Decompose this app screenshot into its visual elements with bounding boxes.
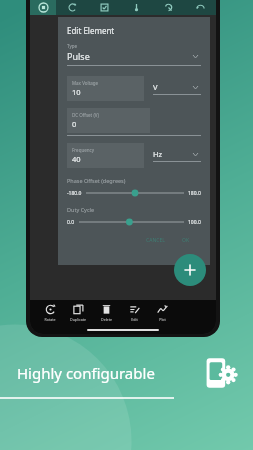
staticText: Edit [131,317,138,322]
button[interactable]: Max Voltage [67,76,144,101]
button[interactable]: Duplicate [64,300,92,325]
button[interactable]: Record [30,0,56,15]
staticText: 40 [72,154,81,164]
staticText: Duty Cycle [67,206,95,213]
staticText: Highly configurable [17,363,155,383]
button[interactable]: Hz [153,149,201,162]
button[interactable]: Check [88,0,120,15]
staticText: Max Voltage [72,80,99,86]
staticText: Phase Offset (degrees) [67,177,126,184]
staticText: 10 [72,87,81,97]
staticText: 0.0 [67,219,75,226]
button[interactable]: Tool [120,0,152,15]
button[interactable]: Undo [56,0,88,15]
staticText: DC Offset (V) [72,112,99,118]
button[interactable]: Return [184,0,216,15]
staticText: Duplicate [70,317,86,322]
other: Configurable [206,355,236,391]
staticText: Pulse [67,50,90,62]
staticText: 0 [72,119,77,129]
button[interactable]: Delete [92,300,120,325]
staticText: Frequency [72,147,94,153]
staticText: Edit Element [67,25,115,36]
staticText: Hz [153,149,163,159]
button[interactable] [86,189,184,197]
staticText: Type [67,43,78,49]
staticText: V [153,82,158,92]
staticText: -180.0 [67,190,82,197]
staticText: Rotate [44,317,56,322]
button[interactable]: Touch [152,0,184,15]
button[interactable]: OK [177,235,195,246]
staticText: 100.0 [188,219,201,226]
button[interactable]: Frequency [67,143,144,168]
button[interactable]: Rotate [36,300,64,325]
staticText: 180.0 [188,190,201,197]
button[interactable] [79,218,184,226]
button[interactable]: Add element [174,254,206,286]
button[interactable]: Plot [148,300,176,325]
staticText: OK [182,237,190,244]
button[interactable]: Edit [120,300,148,325]
staticText: Delete [101,317,112,322]
button[interactable]: CANCEL [141,235,170,246]
button[interactable]: DC Offset (V) [67,108,150,133]
staticText: Plot [159,317,166,322]
staticText: CANCEL [146,237,165,244]
button[interactable]: V [153,82,201,95]
